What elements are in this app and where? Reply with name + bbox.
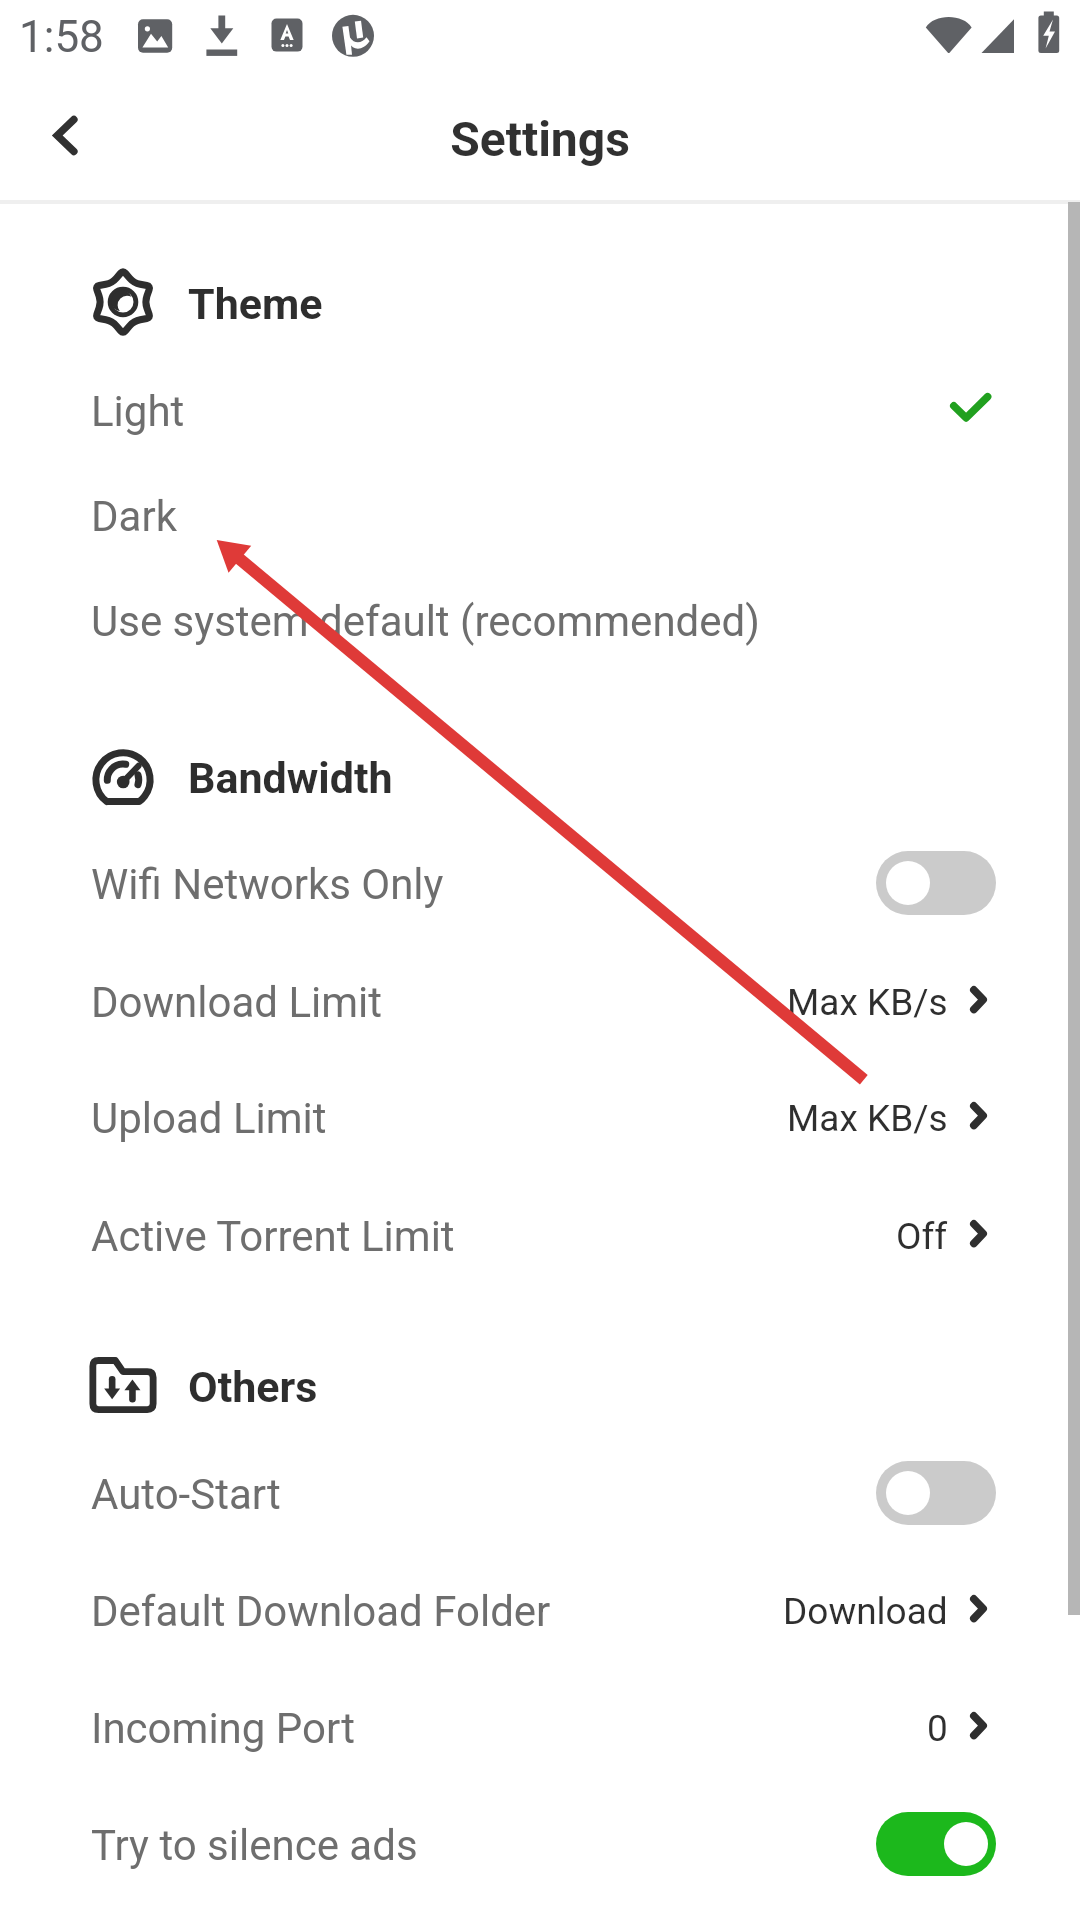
staticText: Dark bbox=[91, 492, 177, 541]
button[interactable]: Wifi Networks Only bbox=[0, 826, 1080, 942]
staticText: Default Download Folder bbox=[91, 1587, 551, 1636]
staticText: Light bbox=[91, 387, 185, 436]
staticText: Bandwidth bbox=[188, 753, 393, 803]
staticText: Max KB/s bbox=[787, 1097, 948, 1140]
button[interactable]: Light bbox=[0, 353, 1080, 469]
staticText: Max KB/s bbox=[787, 981, 948, 1024]
staticText: Use system default (recommended) bbox=[91, 597, 760, 646]
staticText: Theme bbox=[188, 279, 323, 329]
staticText: Settings bbox=[0, 111, 1080, 167]
staticText: Others bbox=[188, 1362, 318, 1412]
button[interactable]: Upload Limit bbox=[0, 1060, 1080, 1176]
button[interactable]: Active Torrent Limit bbox=[0, 1178, 1080, 1294]
staticText: Active Torrent Limit bbox=[91, 1212, 455, 1261]
staticText: Incoming Port bbox=[91, 1704, 355, 1753]
staticText: Auto-Start bbox=[91, 1470, 281, 1519]
button[interactable]: On bbox=[876, 1812, 996, 1876]
staticText: Upload Limit bbox=[91, 1094, 327, 1143]
other: Selected bbox=[944, 386, 1004, 446]
staticText: Wifi Networks Only bbox=[91, 860, 444, 909]
button[interactable]: Incoming Port bbox=[0, 1670, 1080, 1786]
button[interactable]: Use system default (recommended) bbox=[0, 563, 1080, 679]
staticText: Download Limit bbox=[91, 978, 383, 1027]
button[interactable]: Default Download Folder bbox=[0, 1553, 1080, 1669]
button[interactable]: Back bbox=[20, 90, 118, 188]
staticText: 1:58 bbox=[19, 11, 104, 63]
staticText: Off bbox=[896, 1215, 948, 1258]
staticText: Download bbox=[783, 1590, 948, 1633]
button[interactable]: Off bbox=[876, 851, 996, 915]
button[interactable]: Off bbox=[876, 1461, 996, 1525]
button[interactable]: Auto-Start bbox=[0, 1436, 1080, 1552]
staticText: 0 bbox=[927, 1707, 948, 1750]
button[interactable]: Try to silence ads bbox=[0, 1787, 1080, 1903]
button[interactable]: Download Limit bbox=[0, 944, 1080, 1060]
button[interactable]: Dark bbox=[0, 458, 1080, 574]
staticText: Try to silence ads bbox=[91, 1821, 418, 1870]
